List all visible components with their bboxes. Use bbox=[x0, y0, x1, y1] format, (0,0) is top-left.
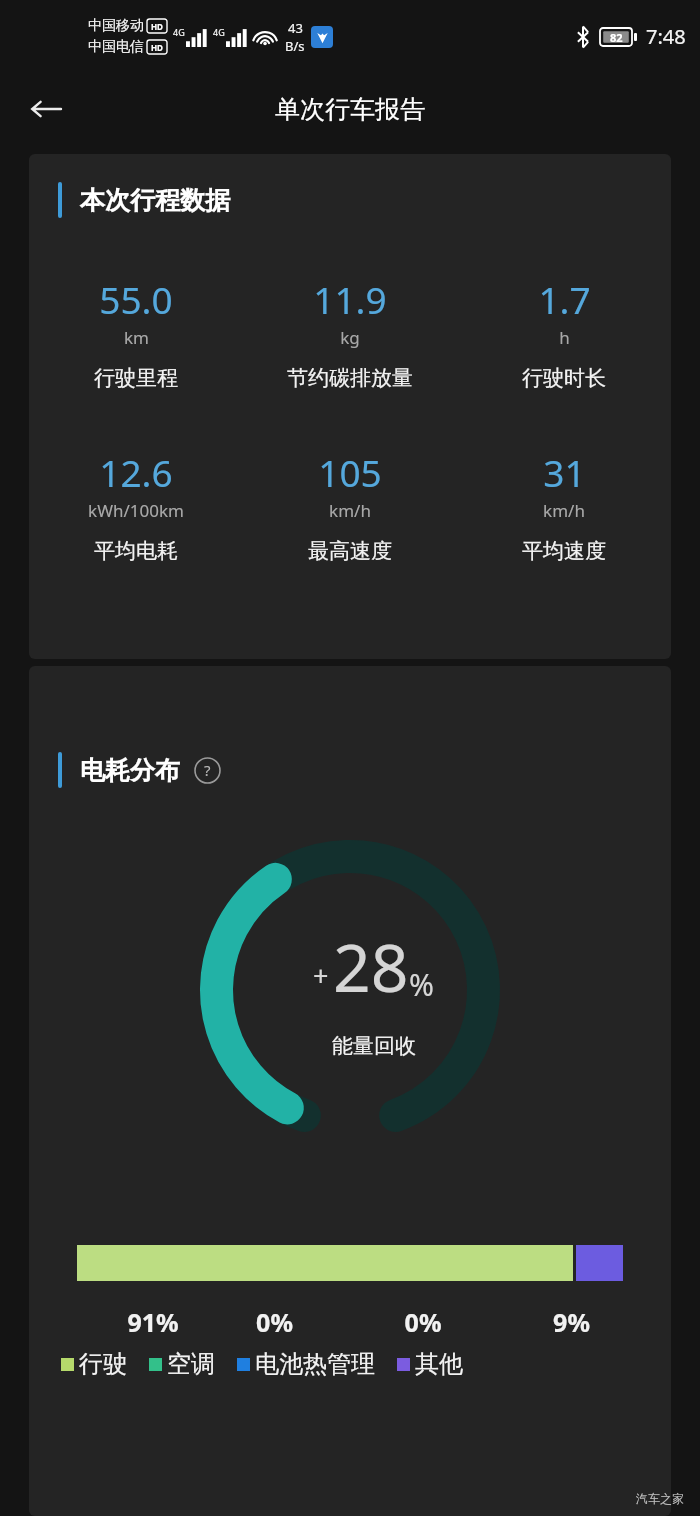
staticText: HD bbox=[151, 21, 163, 32]
staticText: 55.0 bbox=[99, 274, 173, 324]
staticText: 最高速度 bbox=[308, 538, 392, 564]
staticText: 28 bbox=[333, 921, 409, 1011]
staticText: 单次行车报告 bbox=[275, 94, 425, 125]
staticText: 平均速度 bbox=[522, 538, 606, 564]
button[interactable]: 帮助说明 bbox=[192, 755, 222, 785]
staticText: + bbox=[313, 957, 329, 994]
staticText: 行驶时长 bbox=[522, 365, 606, 391]
staticText: 中国移动 bbox=[88, 17, 144, 35]
staticText: 汽车之家 bbox=[636, 1491, 684, 1506]
staticText: 91% bbox=[89, 1305, 217, 1339]
staticText: 0% bbox=[332, 1305, 514, 1339]
staticText: 节约碳排放量 bbox=[287, 365, 413, 391]
staticText: B/s bbox=[285, 37, 305, 55]
staticText: 4G bbox=[173, 26, 185, 38]
staticText: 31 bbox=[543, 447, 586, 497]
staticText: 4G bbox=[213, 26, 225, 38]
staticText: km bbox=[124, 326, 149, 349]
staticText: 7:48 bbox=[646, 23, 686, 50]
staticText: 能量回收 bbox=[332, 1033, 416, 1059]
staticText: 本次行程数据 bbox=[80, 185, 230, 216]
staticText: 平均电耗 bbox=[94, 538, 178, 564]
staticText: h bbox=[559, 326, 570, 349]
staticText: 82 bbox=[610, 30, 623, 45]
staticText: HD bbox=[151, 42, 163, 53]
staticText: 11.9 bbox=[313, 274, 387, 324]
staticText: kWh/100km bbox=[88, 499, 184, 522]
staticText: 105 bbox=[318, 447, 382, 497]
staticText: 行驶 bbox=[79, 1349, 127, 1379]
staticText: 其他 bbox=[415, 1349, 463, 1379]
button[interactable]: 返回 bbox=[18, 81, 74, 137]
staticText: 0% bbox=[217, 1305, 332, 1339]
staticText: 9% bbox=[514, 1305, 629, 1339]
staticText: 中国电信 bbox=[88, 38, 144, 56]
staticText: km/h bbox=[543, 499, 585, 522]
staticText: kg bbox=[340, 326, 360, 349]
staticText: 行驶里程 bbox=[94, 365, 178, 391]
staticText: 电耗分布 bbox=[80, 755, 180, 786]
staticText: 电池热管理 bbox=[255, 1349, 375, 1379]
staticText: 43 bbox=[288, 19, 303, 37]
staticText: % bbox=[409, 964, 434, 1005]
staticText: km/h bbox=[329, 499, 371, 522]
staticText: ? bbox=[204, 760, 211, 780]
staticText: 12.6 bbox=[99, 447, 173, 497]
staticText: 空调 bbox=[167, 1349, 215, 1379]
staticText: 1.7 bbox=[538, 274, 591, 324]
